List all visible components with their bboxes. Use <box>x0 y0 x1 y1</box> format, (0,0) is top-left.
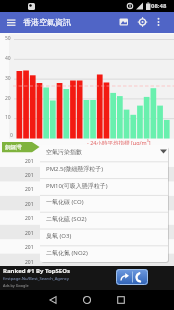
staticText: 一氧化碳 (CO) <box>46 198 84 206</box>
button[interactable] <box>116 269 148 285</box>
staticText: 香港空氣資訊 <box>23 17 71 27</box>
staticText: 201 <box>25 230 34 237</box>
button[interactable]: 二氧化氮 (NO2) <box>40 246 168 262</box>
staticText: 40 <box>5 55 11 62</box>
button[interactable]: PM10(可吸入懸浮粒子) <box>40 179 168 196</box>
button[interactable] <box>70 290 104 310</box>
staticText: Ads by Google <box>3 283 29 288</box>
button[interactable]: 空氣污染指數 <box>40 145 168 162</box>
staticText: 08:48 <box>151 2 167 10</box>
button[interactable]: 二氧化硫 (SO2) <box>40 212 168 229</box>
staticText: 臭氧 (O3) <box>46 232 72 240</box>
staticText: 201 <box>25 201 34 208</box>
button[interactable]: Ranked #1 By TopSEOs <box>0 266 174 290</box>
staticText: 201 <box>25 158 34 165</box>
staticText: 50 <box>5 35 11 42</box>
button[interactable] <box>2 142 40 153</box>
button[interactable] <box>36 290 70 310</box>
button[interactable] <box>114 14 132 31</box>
button[interactable] <box>2 14 20 31</box>
staticText: Ranked #1 By TopSEOs <box>3 267 70 275</box>
staticText: - 24小時平均指標 [μg/m³] <box>87 139 151 147</box>
staticText: 空氣污染指數 <box>46 148 82 156</box>
staticText: 10 <box>5 114 11 121</box>
button[interactable] <box>104 290 138 310</box>
staticText: 201 <box>25 186 34 193</box>
staticText: PM10(可吸入懸浮粒子) <box>46 182 108 190</box>
staticText: 201 <box>25 172 34 179</box>
staticText: 二氧化硫 (SO2) <box>46 215 87 223</box>
button[interactable]: 臭氧 (O3) <box>40 229 168 246</box>
button[interactable] <box>152 14 166 31</box>
staticText: 201 <box>25 215 34 222</box>
button[interactable] <box>134 14 152 31</box>
staticText: 201 <box>25 244 34 251</box>
staticText: 30 <box>5 75 11 82</box>
staticText: PM2.5(微細懸浮粒子) <box>46 165 104 173</box>
button[interactable]: PM2.5(微細懸浮粒子) <box>40 162 168 179</box>
staticText: firstpage.Nu/Best_Search_Agency <box>3 276 70 282</box>
staticText: 20 <box>5 95 11 102</box>
button[interactable]: 一氧化碳 (CO) <box>40 195 168 212</box>
staticText: 銅鑼灣 <box>5 144 22 151</box>
staticText: 二氧化氮 (NO2) <box>46 249 88 257</box>
staticText: 201 <box>25 259 34 266</box>
staticText: 0 <box>10 132 13 139</box>
